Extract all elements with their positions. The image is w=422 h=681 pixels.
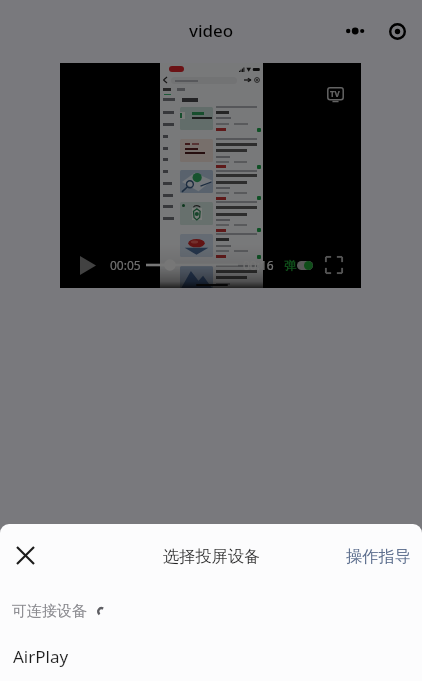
staticText: 弹 (284, 258, 296, 273)
staticText: TV (330, 88, 340, 99)
button[interactable]: Cast to TV (321, 80, 349, 108)
staticText: AirPlay (13, 645, 69, 668)
staticText: video (189, 19, 234, 42)
staticText: 选择投屏设备 (163, 546, 261, 566)
button[interactable]: Danmaku toggle (284, 258, 313, 273)
staticText: 00:05 (110, 257, 141, 273)
staticText: 可连接设备 (12, 602, 87, 620)
button[interactable]: Play (74, 251, 102, 279)
button[interactable]: Fullscreen (323, 254, 345, 276)
button[interactable]: Close (7, 537, 43, 573)
staticText: 操作指导 (346, 546, 411, 566)
button[interactable]: AirPlay (0, 634, 422, 679)
button[interactable]: 操作指导 (334, 542, 422, 574)
button[interactable]: More options (337, 12, 375, 50)
staticText: 00:16 (243, 257, 274, 273)
button[interactable]: Close (378, 12, 416, 50)
